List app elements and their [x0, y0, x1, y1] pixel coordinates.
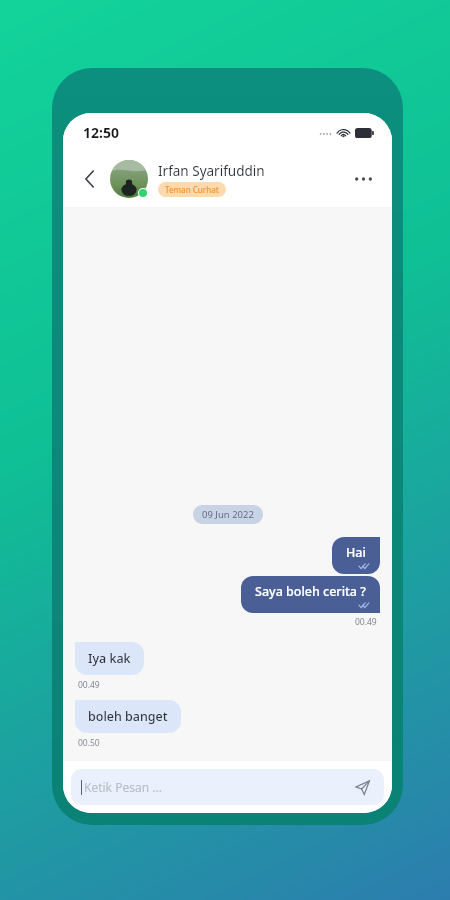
staticText: Saya boleh cerita ?	[255, 583, 366, 600]
staticText: Irfan Syarifuddin	[158, 162, 265, 180]
staticText: boleh banget	[88, 708, 168, 725]
staticText: Hai	[346, 544, 366, 561]
button[interactable]: boleh banget	[75, 700, 181, 733]
button[interactable]: Ketik Pesan ...	[71, 769, 384, 805]
staticText: Teman Curhat	[165, 184, 219, 195]
staticText: 09 Jun 2022	[202, 508, 254, 521]
staticText: 00.50	[78, 737, 100, 749]
staticText: 12:50	[83, 123, 119, 142]
button[interactable]: Iya kak	[75, 642, 144, 675]
staticText: 00.49	[78, 679, 100, 691]
staticText: Iya kak	[88, 650, 131, 667]
staticText: 00.49	[355, 616, 377, 628]
button[interactable]: More options	[348, 164, 378, 194]
button[interactable]: Hai	[332, 537, 380, 574]
button[interactable]: Saya boleh cerita ?	[241, 576, 380, 613]
button[interactable]: Back	[73, 163, 105, 195]
button[interactable]: Send	[350, 775, 374, 799]
staticText: Ketik Pesan ...	[84, 779, 350, 795]
